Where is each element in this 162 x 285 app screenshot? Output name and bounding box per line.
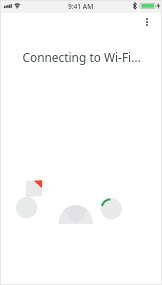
button[interactable]: More options <box>136 13 158 35</box>
staticText: Connecting to Wi-Fi… <box>22 49 141 65</box>
staticText: 9:41 AM <box>68 2 94 11</box>
